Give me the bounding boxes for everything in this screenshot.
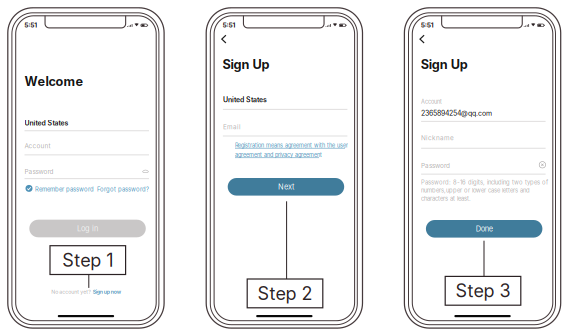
staticText: Password (24, 168, 53, 176)
button[interactable]: agreement and privacy agreement (235, 152, 322, 158)
staticText: Welcome (24, 74, 83, 89)
staticText: Email (223, 123, 241, 131)
staticText: United States (24, 119, 68, 127)
staticText: Forgot password? (97, 186, 149, 193)
staticText: characters at least. (421, 195, 471, 202)
button[interactable]: Next (228, 178, 344, 196)
staticText: Account (24, 142, 50, 150)
staticText: Remember password (35, 186, 94, 193)
button[interactable]: Back (221, 34, 227, 44)
staticText: Password (421, 162, 450, 169)
staticText: Password: 8-16 digits, including two typ… (421, 179, 548, 186)
staticText: Sign Up (421, 57, 468, 72)
staticText: Account (421, 98, 442, 105)
staticText: Sign Up (222, 57, 269, 72)
staticText: Step 1 (62, 249, 113, 271)
staticText: Step 3 (455, 280, 510, 302)
staticText: Done (476, 224, 493, 233)
button[interactable]: Registration means agreement with the us… (235, 142, 348, 149)
button[interactable]: Done (426, 220, 542, 238)
button[interactable]: Log in (29, 220, 146, 237)
staticText: 5:51 (421, 21, 434, 29)
staticText: 5:51 (223, 21, 236, 29)
staticText: United States (223, 96, 267, 104)
button[interactable]: Back (419, 34, 425, 44)
button[interactable]: Forgot password? (97, 186, 149, 193)
staticText: Sign up now (93, 289, 121, 295)
staticText: Nickname (421, 134, 454, 142)
button[interactable]: Sign up now (93, 289, 121, 295)
staticText: 2365894254@qq.com (421, 109, 492, 117)
staticText: agreement and privacy agreement (235, 152, 322, 158)
staticText: Next (278, 182, 294, 191)
staticText: Step 2 (257, 282, 312, 304)
staticText: Log in (77, 224, 98, 233)
staticText: No account yet? (51, 289, 91, 295)
staticText: numbers,upper or lower case letters and (421, 187, 530, 194)
staticText: Registration means agreement with the us… (235, 142, 348, 149)
staticText: 5:51 (24, 21, 37, 29)
